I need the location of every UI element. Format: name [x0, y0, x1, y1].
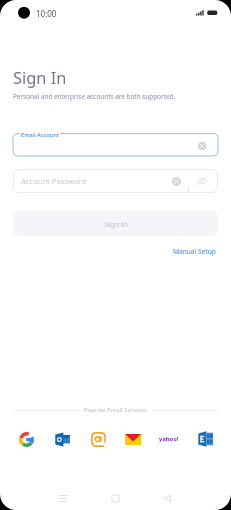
button[interactable]: Recents: [52, 488, 73, 509]
button[interactable]: Outlook: [49, 426, 75, 452]
staticText: Manual Setup: [173, 247, 216, 256]
staticText: Sign In: [104, 219, 128, 229]
button[interactable]: Gmail: [13, 426, 39, 452]
button[interactable]: Exchange: [192, 426, 218, 452]
button[interactable]: Mail.ru: [85, 426, 111, 452]
staticText: 10:00: [36, 8, 57, 19]
staticText: Sign In: [13, 66, 67, 88]
staticText: Popular Email Services: [84, 406, 147, 414]
button[interactable]: Home: [105, 488, 126, 509]
button[interactable]: Yahoo: [156, 426, 182, 452]
button[interactable]: Mail: [120, 426, 146, 452]
button[interactable]: Back: [157, 488, 178, 509]
button[interactable]: Show password: [195, 175, 207, 187]
button[interactable]: Sign In: [13, 211, 218, 236]
button[interactable]: Account Password: [13, 169, 218, 193]
button[interactable]: Manual Setup: [170, 245, 219, 258]
button[interactable]: Clear password: [170, 175, 182, 187]
staticText: Account Password: [21, 176, 87, 186]
staticText: yahoo!: [159, 435, 179, 443]
button[interactable]: Clear email: [196, 140, 208, 152]
staticText: Email Account: [21, 131, 59, 139]
staticText: Personal and enterprise accounts are bot…: [13, 92, 176, 101]
